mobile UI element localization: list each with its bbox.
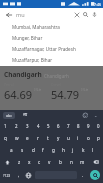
staticText: a [10,147,13,153]
staticText: s [21,147,24,153]
button[interactable]: 8 [73,120,83,132]
staticText: g [52,147,55,153]
staticText: 7:46 [94,2,102,7]
button[interactable]: Backspace [88,156,103,168]
button[interactable]: q [0,132,11,144]
button[interactable]: m [77,156,88,168]
button[interactable]: e [22,132,33,144]
button[interactable]: v [44,156,55,168]
button[interactable]: 2 [11,120,22,132]
button[interactable]: More options [93,112,99,118]
button[interactable]: 5 [43,120,53,132]
button[interactable]: s [17,144,28,156]
staticText: u [67,135,70,141]
button[interactable]: k [78,144,88,156]
button[interactable]: 3 [22,120,33,132]
button[interactable]: t [43,132,53,144]
staticText: ⌄ [94,113,98,118]
button[interactable]: y [53,132,63,144]
button[interactable]: 4 [33,120,43,132]
staticText: ?123 [3,173,11,178]
staticText: o [87,135,90,141]
staticText: 3 [26,123,29,129]
staticText: 0 [97,123,100,129]
staticText: r [37,135,39,141]
staticText: j [72,147,74,153]
button[interactable]: p [93,132,103,144]
staticText: e [26,135,29,141]
button[interactable]: Muzaffarnagar, Uttar Pradesh [0,43,103,54]
button[interactable]: u [63,132,73,144]
button[interactable]: Voice search [90,10,99,19]
staticText: 5 [47,123,50,129]
button[interactable]: o [83,132,93,144]
button[interactable]: Munger, Bihar [0,32,103,43]
button[interactable]: Change language [23,168,34,182]
staticText: 2 [15,123,18,129]
staticText: , [18,172,20,178]
staticText: Muzaffarpur, Bihar [12,57,53,63]
button[interactable]: f [38,144,48,156]
button[interactable]: Back [4,10,13,19]
button[interactable]: 1 [0,120,11,132]
staticText: p [97,135,100,141]
button[interactable]: 6 [53,120,63,132]
button[interactable]: g [48,144,58,156]
staticText: Mumbai, Maharashtra [12,24,60,30]
staticText: k [82,147,85,153]
button[interactable]: l [88,144,98,156]
staticText: d [32,147,35,153]
staticText: y [57,135,60,141]
button[interactable]: x [24,156,34,168]
button[interactable]: Search [90,170,100,180]
button[interactable]: abc [3,112,15,119]
staticText: 6 [57,123,60,129]
staticText: l [92,147,94,153]
staticText: x [28,159,31,165]
staticText: Chandigarh [44,73,69,79]
button[interactable]: r [33,132,43,144]
button[interactable]: j [68,144,78,156]
staticText: 1 [4,123,7,129]
button[interactable]: . [78,168,87,182]
staticText: ₹/Ltr [34,88,42,92]
button[interactable]: 7 [63,120,73,132]
button[interactable]: w [11,132,22,144]
staticText: . [82,172,84,178]
button[interactable]: Muzaffarpur, Bihar [0,54,103,65]
button[interactable]: h [58,144,68,156]
button[interactable]: c [34,156,44,168]
button[interactable]: स्व [21,112,29,118]
button[interactable]: Search [81,10,90,19]
staticText: ₹/Ltr [81,88,89,92]
button[interactable]: b [55,156,66,168]
staticText: h [62,147,65,153]
button[interactable]: d [28,144,38,156]
button[interactable]: z [14,156,24,168]
staticText: 64.69 [4,87,33,102]
staticText: t [47,135,49,141]
button[interactable]: a [6,144,17,156]
button[interactable]: i [73,132,83,144]
button[interactable]: Mumbai, Maharashtra [0,21,103,32]
staticText: n [70,159,73,165]
staticText: w [15,135,19,141]
button[interactable]: Clear [72,10,81,19]
button[interactable]: Emoji keyboard [14,168,23,182]
button[interactable]: 9 [83,120,93,132]
button[interactable]: 0 [93,120,103,132]
staticText: Muzaffarnagar, Uttar Pradesh [12,46,76,52]
staticText: z [18,159,21,165]
staticText: 4 [37,123,40,129]
staticText: i [77,135,79,141]
staticText: 7 [67,123,70,129]
button[interactable]: Shift [0,156,14,168]
staticText: m [80,159,85,165]
button[interactable]: n [66,156,77,168]
button[interactable]: Emoji [82,112,88,118]
staticText: abc [6,113,12,118]
button[interactable]: ?123 [0,168,14,182]
